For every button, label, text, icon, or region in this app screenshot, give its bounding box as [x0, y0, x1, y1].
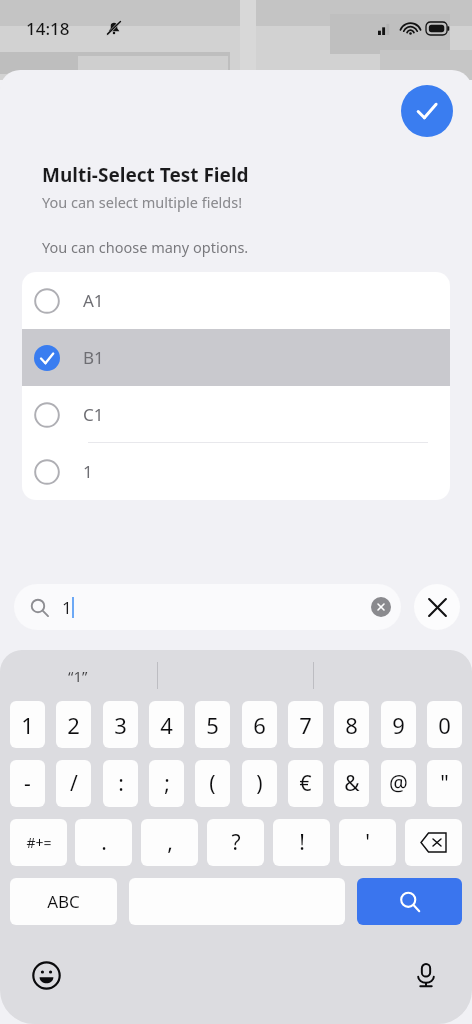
button[interactable]: ; [149, 760, 184, 807]
button[interactable]: Close [414, 584, 460, 630]
staticText: 5 [206, 710, 219, 740]
staticText: 7 [299, 710, 312, 740]
button[interactable]: 1 [10, 701, 45, 748]
button[interactable]: 5 [195, 701, 230, 748]
button[interactable]: - [10, 760, 45, 807]
staticText: A1 [83, 289, 104, 312]
button[interactable]: 1 [14, 584, 401, 630]
staticText: #+= [26, 833, 52, 852]
button[interactable]: Search [357, 878, 462, 925]
staticText: 14:18 [26, 17, 70, 40]
staticText: ! [299, 828, 305, 857]
staticText: , [167, 828, 173, 857]
button[interactable]: Voice input [410, 959, 442, 991]
button[interactable]: 3 [103, 701, 138, 748]
button[interactable]: 4 [149, 701, 184, 748]
button[interactable]: 2 [56, 701, 91, 748]
button[interactable]: 7 [288, 701, 323, 748]
staticText: 9 [392, 710, 405, 740]
staticText: 3 [114, 710, 127, 740]
staticText: C1 [83, 403, 104, 426]
staticText: “1” [68, 666, 88, 686]
staticText: : [118, 769, 124, 798]
button[interactable]: € [288, 760, 323, 807]
staticText: € [299, 769, 312, 798]
button[interactable]: 0 [427, 701, 462, 748]
staticText: ABC [47, 890, 80, 913]
staticText: ; [164, 769, 170, 798]
staticText: . [101, 828, 107, 857]
staticText: 0 [438, 710, 451, 740]
button[interactable]: " [427, 760, 462, 807]
button[interactable]: ' [339, 819, 396, 866]
button[interactable]: 6 [242, 701, 277, 748]
staticText: 8 [345, 710, 358, 740]
staticText: @ [389, 769, 408, 798]
staticText: 4 [160, 710, 173, 740]
staticText: ( [209, 769, 216, 798]
staticText: 1 [83, 460, 93, 483]
staticText: / [70, 769, 78, 798]
button[interactable]: ) [242, 760, 277, 807]
button[interactable]: ABC [10, 878, 117, 925]
button[interactable]: #+= [10, 819, 67, 866]
staticText: You can select multiple fields! [42, 192, 243, 212]
staticText: 1 [62, 596, 72, 619]
button[interactable]: A1 [22, 272, 450, 329]
staticText: 6 [253, 710, 266, 740]
staticText: " [440, 769, 449, 798]
button[interactable]: 9 [381, 701, 416, 748]
button[interactable]: Confirm [401, 85, 453, 137]
staticText: - [24, 769, 31, 798]
button[interactable]: ! [273, 819, 330, 866]
staticText: 2 [67, 710, 80, 740]
button[interactable]: ? [207, 819, 264, 866]
button[interactable]: B1 [22, 329, 450, 386]
button[interactable]: / [56, 760, 91, 807]
staticText: ' [365, 828, 370, 857]
button[interactable]: : [103, 760, 138, 807]
button[interactable]: . [75, 819, 132, 866]
button[interactable]: Clear text [371, 597, 391, 617]
button[interactable]: , [141, 819, 198, 866]
staticText: Multi-Select Test Field [42, 162, 249, 188]
staticText: You can choose many options. [42, 237, 249, 257]
staticText: 1 [21, 710, 34, 740]
staticText: B1 [83, 346, 104, 369]
button[interactable]: C1 [22, 386, 450, 443]
button[interactable]: Emoji [30, 959, 62, 991]
staticText: ) [256, 769, 263, 798]
button[interactable]: 1 [22, 443, 450, 500]
button[interactable]: 8 [334, 701, 369, 748]
button[interactable]: Backspace [405, 819, 462, 866]
button[interactable]: & [334, 760, 369, 807]
staticText: & [344, 769, 360, 798]
button[interactable]: @ [381, 760, 416, 807]
button[interactable]: ( [195, 760, 230, 807]
staticText: ? [231, 828, 241, 857]
